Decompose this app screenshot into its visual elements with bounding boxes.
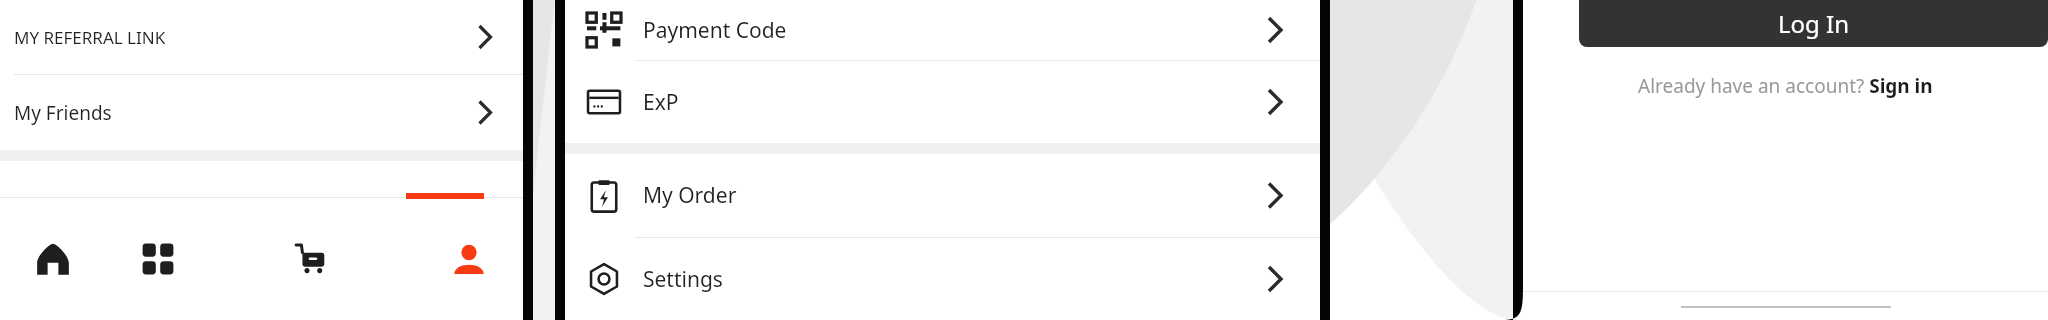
staticText: Already have an account? Sign in: [1638, 73, 1933, 99]
staticText: Log In: [1778, 7, 1850, 40]
button[interactable]: Cart: [210, 198, 415, 320]
button[interactable]: MY REFERRAL LINK: [0, 0, 523, 74]
staticText: Settings: [643, 265, 723, 294]
button[interactable]: ExP: [565, 61, 1320, 143]
button[interactable]: Account: [415, 198, 523, 320]
button[interactable]: Home: [0, 198, 105, 320]
staticText: MY REFERRAL LINK: [14, 26, 166, 49]
button[interactable]: Categories: [105, 198, 210, 320]
staticText: My Order: [643, 181, 737, 210]
button[interactable]: My Order: [565, 154, 1320, 237]
staticText: My Friends: [14, 100, 112, 126]
staticText: Payment Code: [643, 16, 787, 45]
button[interactable]: My Friends: [0, 75, 523, 150]
button[interactable]: Log In: [1579, 0, 2048, 47]
button[interactable]: Already have an account? Sign in: [1638, 73, 1933, 99]
button[interactable]: Payment Code: [565, 0, 1320, 60]
button[interactable]: Settings: [565, 238, 1320, 320]
staticText: ExP: [643, 88, 679, 117]
